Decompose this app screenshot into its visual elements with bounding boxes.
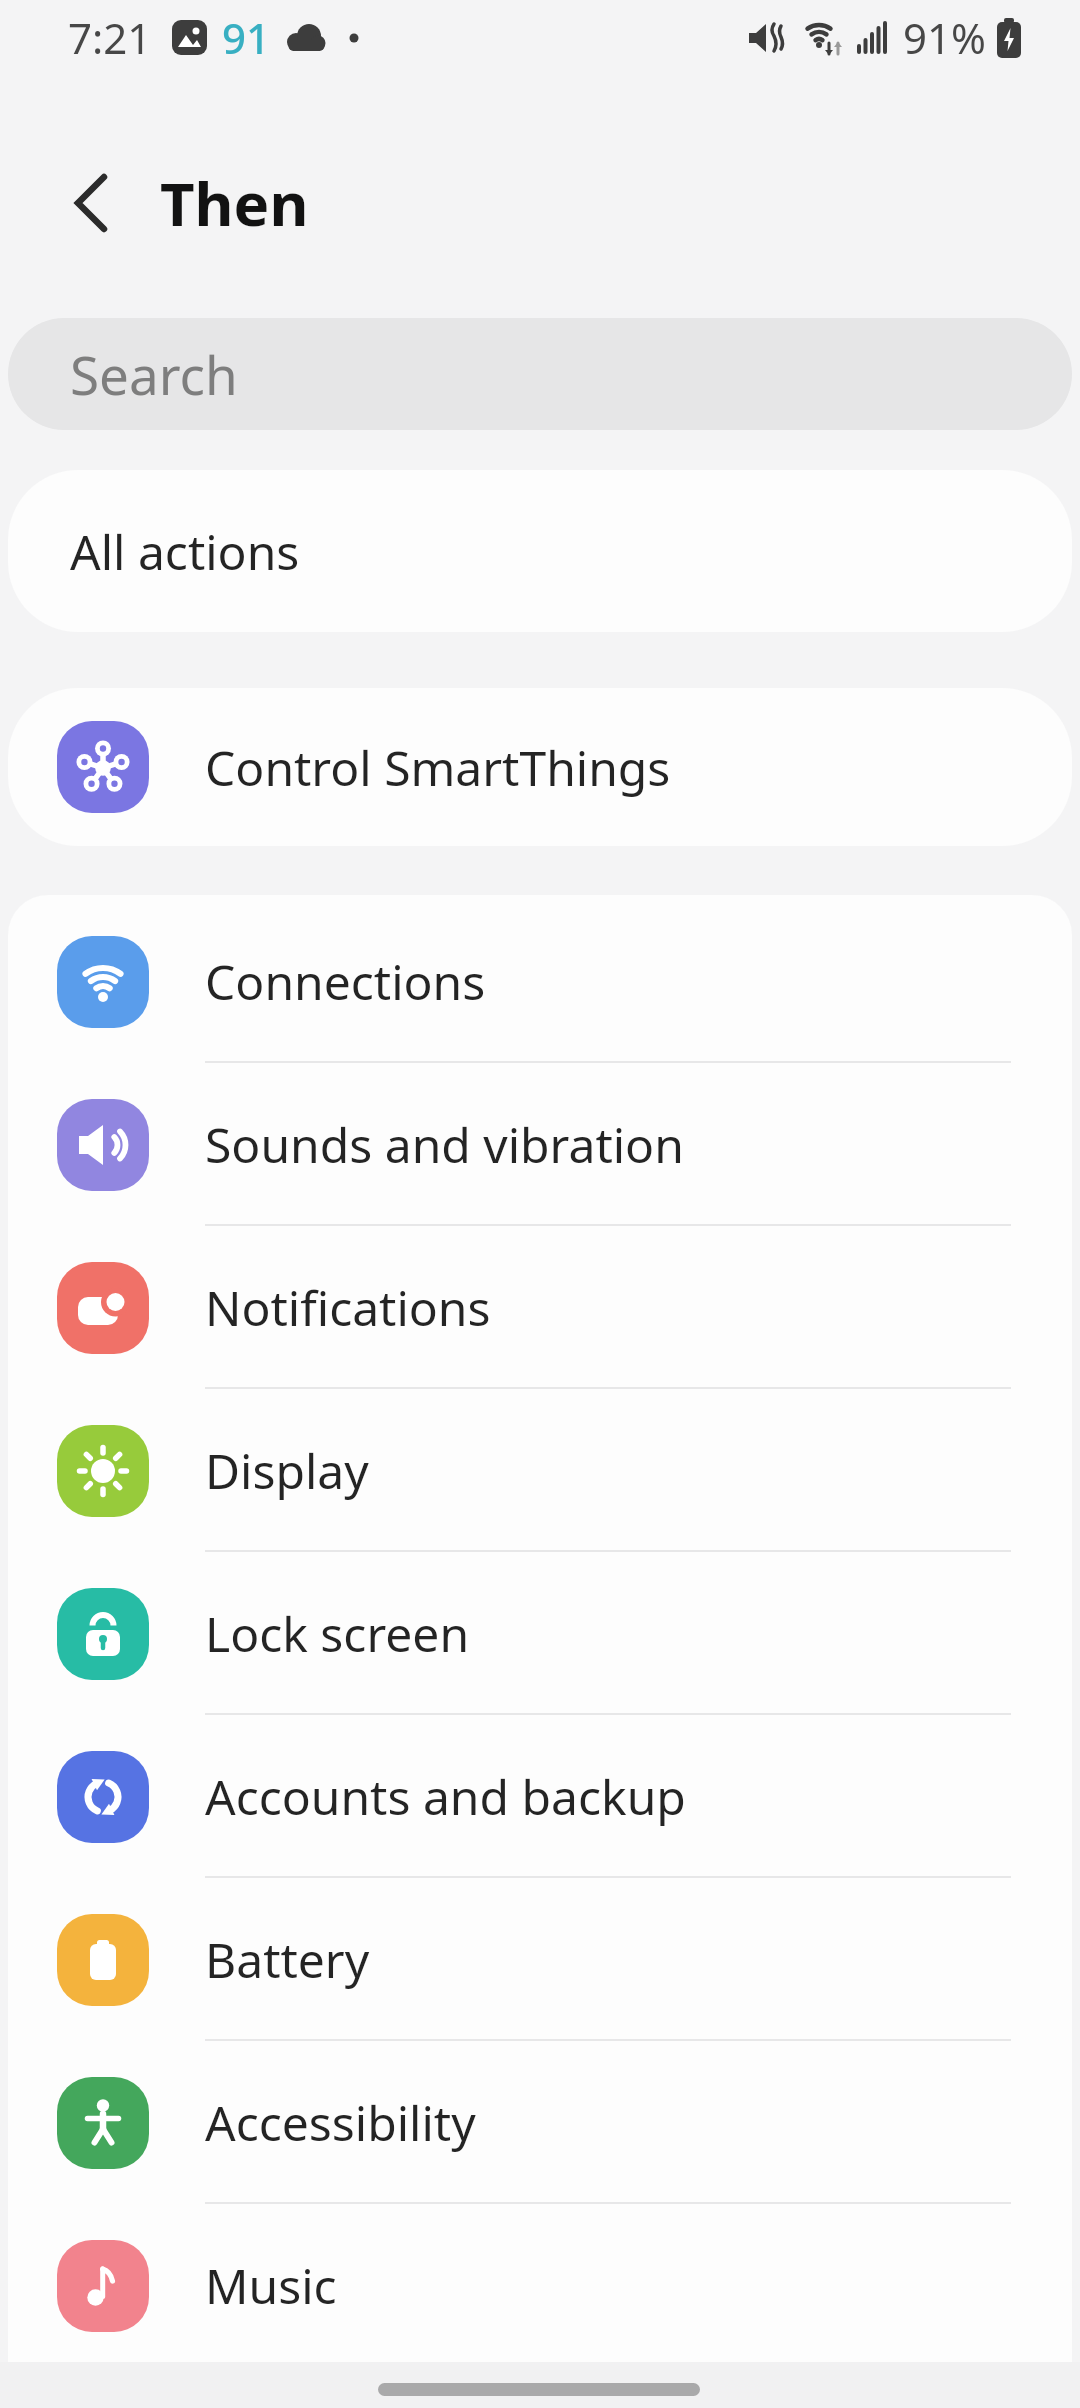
staticText: Display [205,1438,369,1503]
staticText: Music [205,2253,337,2318]
button[interactable]: Connections [8,900,1072,1063]
staticText: Search [70,338,238,410]
staticText: Connections [205,949,486,1014]
button[interactable]: Battery [8,1878,1072,2041]
button[interactable]: Sounds and vibration [8,1063,1072,1226]
button[interactable]: Control SmartThings [8,688,1072,846]
staticText: Then [160,162,309,244]
button[interactable]: Music [8,2204,1072,2367]
button[interactable] [378,2383,700,2396]
staticText: 7:21 [68,9,152,66]
staticText: Lock screen [205,1601,470,1666]
button[interactable]: All actions [8,470,1072,632]
staticText: 91% [903,9,986,66]
button[interactable]: Accounts and backup [8,1715,1072,1878]
staticText: Notifications [205,1275,491,1340]
staticText: 91 [222,9,271,66]
staticText: Sounds and vibration [205,1112,684,1177]
staticText: Accounts and backup [205,1764,686,1829]
staticText: Control SmartThings [205,735,671,800]
button[interactable] [60,168,130,238]
button[interactable]: Search [8,318,1072,430]
staticText: Accessibility [205,2090,476,2155]
button[interactable]: Display [8,1389,1072,1552]
button[interactable]: Lock screen [8,1552,1072,1715]
button[interactable]: Accessibility [8,2041,1072,2204]
button[interactable]: Notifications [8,1226,1072,1389]
staticText: Battery [205,1927,370,1992]
staticText: All actions [70,519,300,584]
